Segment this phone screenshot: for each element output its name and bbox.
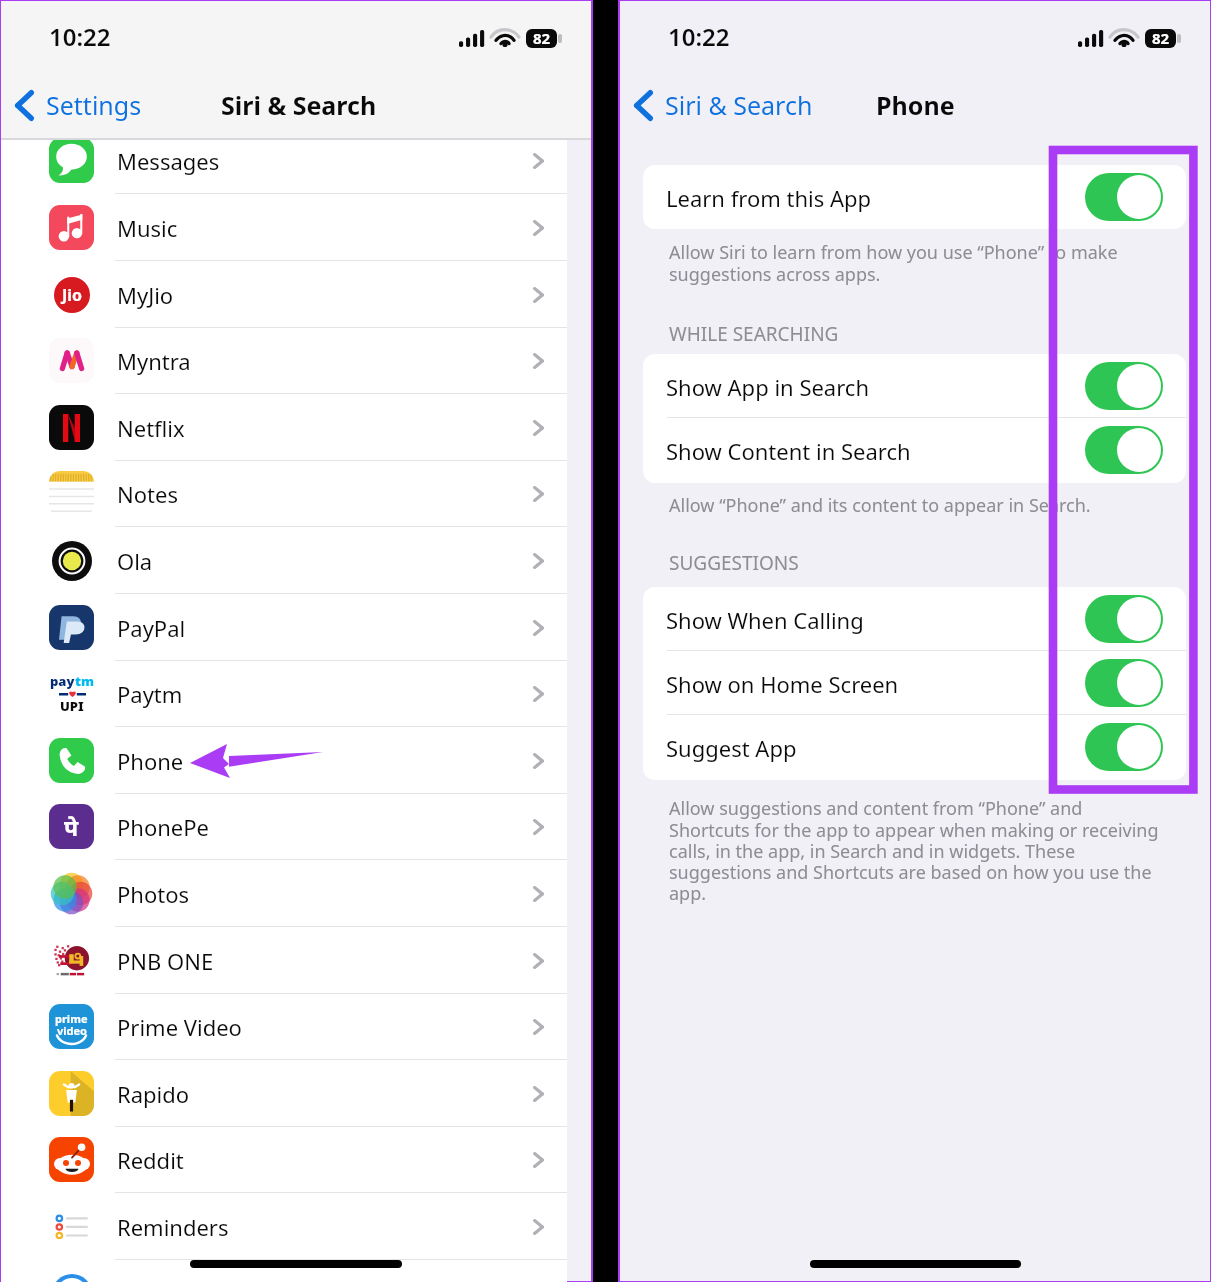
button[interactable]: PayPal — [1, 594, 567, 661]
button[interactable]: Show When Calling — [1085, 595, 1163, 643]
staticText: Show on Home Screen — [666, 669, 899, 699]
staticText: Messages — [117, 146, 220, 176]
button[interactable]: PNB ONE — [1, 927, 567, 994]
button[interactable]: Ola — [1, 527, 567, 594]
button[interactable]: Reminders — [1, 1193, 567, 1260]
staticText: पे — [64, 811, 79, 842]
staticText: Reminders — [117, 1212, 229, 1242]
staticText: 82 — [1145, 28, 1176, 47]
button[interactable]: Reddit — [1, 1126, 567, 1193]
button[interactable]: Suggest App — [1085, 723, 1163, 771]
button[interactable]: Jio — [1, 261, 567, 328]
staticText: 82 — [526, 28, 557, 47]
button[interactable]: Rapido — [1, 1060, 567, 1127]
staticText: Phone — [876, 88, 955, 122]
staticText: PhonePe — [117, 812, 209, 842]
staticText: MyJio — [117, 280, 174, 310]
staticText: Paytm — [117, 679, 183, 709]
button[interactable]: Show on Home Screen — [1085, 659, 1163, 707]
staticText: Rapido — [117, 1079, 190, 1109]
staticText: Prime Video — [117, 1012, 242, 1042]
staticText: video — [57, 1023, 87, 1038]
staticText: Ola — [117, 546, 153, 576]
button[interactable]: Myntra — [1, 327, 567, 394]
button[interactable]: Show App in Search — [643, 354, 1186, 418]
staticText: Learn from this App — [666, 183, 872, 213]
staticText: Allow Siri to learn from how you use “Ph… — [669, 240, 1159, 286]
staticText: SUGGESTIONS — [669, 550, 799, 576]
button[interactable]: Phone — [1, 727, 567, 794]
staticText: 10:22 — [49, 20, 111, 53]
button[interactable]: Show App in Search — [1085, 362, 1163, 410]
button[interactable]: Suggest App — [643, 715, 1186, 779]
button[interactable]: Show Content in Search — [1085, 426, 1163, 474]
button[interactable]: Messages — [1, 140, 567, 194]
staticText: Reddit — [117, 1145, 184, 1175]
button[interactable]: Back to Settings — [9, 83, 105, 128]
staticText: Show Content in Search — [666, 436, 911, 466]
staticText: Siri & Search — [221, 88, 377, 122]
staticText: PayPal — [117, 613, 186, 643]
staticText: Settings — [46, 88, 142, 122]
staticText: Jio — [62, 284, 83, 306]
button[interactable]: Learn from this App — [643, 165, 1186, 229]
staticText: Music — [117, 213, 178, 243]
staticText: prime — [55, 1011, 88, 1026]
staticText: Notes — [117, 479, 178, 509]
staticText: Allow suggestions and content from “Phon… — [669, 796, 1159, 905]
staticText: Show App in Search — [666, 372, 870, 402]
button[interactable]: Photos — [1, 860, 567, 927]
staticText: tm — [75, 672, 94, 690]
button[interactable]: Safari — [1, 1260, 567, 1282]
staticText: 10:22 — [668, 20, 730, 53]
button[interactable]: पे — [1, 793, 567, 860]
staticText: Suggest App — [666, 733, 797, 763]
staticText: Netflix — [117, 413, 185, 443]
button[interactable]: prime — [1, 993, 567, 1060]
staticText: Show When Calling — [666, 605, 864, 635]
button[interactable]: Netflix — [1, 394, 567, 461]
staticText: Siri & Search — [665, 88, 813, 122]
button[interactable]: Back to Siri & Search — [628, 83, 776, 128]
button[interactable]: Music — [1, 194, 567, 261]
staticText: UPI — [60, 697, 84, 715]
button[interactable]: Show When Calling — [643, 587, 1186, 651]
button[interactable]: Show Content in Search — [643, 418, 1186, 482]
staticText: Photos — [117, 879, 190, 909]
staticText: PNB ONE — [117, 946, 214, 976]
staticText: Allow “Phone” and its content to appear … — [669, 493, 1159, 518]
staticText: WHILE SEARCHING — [669, 321, 839, 347]
staticText: Phone — [117, 746, 184, 776]
staticText: pay — [50, 672, 75, 690]
button[interactable]: Notes — [1, 460, 567, 527]
button[interactable]: Learn from this App — [1085, 173, 1163, 221]
button[interactable]: Show on Home Screen — [643, 651, 1186, 715]
staticText: Myntra — [117, 346, 191, 376]
button[interactable]: pay — [1, 660, 567, 727]
